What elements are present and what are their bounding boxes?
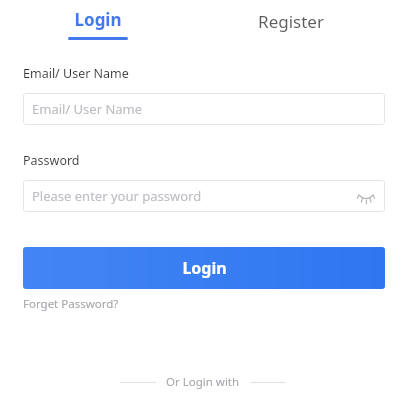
button[interactable]: Login — [62, 8, 134, 40]
staticText: Email/ User Name — [32, 100, 143, 118]
button[interactable]: Email/ User Name — [23, 93, 385, 125]
button[interactable]: Forget Password? — [23, 296, 119, 312]
staticText: Or Login with — [166, 374, 240, 390]
button[interactable]: Show password — [355, 185, 377, 207]
staticText: Please enter your password — [32, 187, 202, 205]
button[interactable]: Register — [248, 8, 334, 34]
staticText: Login — [74, 8, 122, 31]
button[interactable]: Please enter your password — [23, 180, 385, 212]
staticText: Register — [258, 10, 324, 33]
staticText: Forget Password? — [23, 296, 119, 312]
staticText: Email/ User Name — [23, 65, 129, 82]
button[interactable]: Login — [23, 247, 385, 289]
staticText: Login — [182, 257, 227, 279]
staticText: Password — [23, 152, 80, 169]
